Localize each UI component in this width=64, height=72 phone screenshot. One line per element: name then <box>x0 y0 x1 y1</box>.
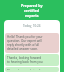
staticText: Prepared by <box>21 3 43 8</box>
staticText: certified <box>24 8 40 13</box>
button[interactable]: Thanks, looking forward <box>7 56 57 64</box>
staticText: detailed answer soon. <box>7 47 38 51</box>
staticText: to hearing back from you <box>7 60 43 64</box>
button[interactable]: Hello! Thank you for your <box>7 35 57 51</box>
staticText: Today, 10:24 <box>23 24 41 28</box>
staticText: experts <box>25 13 39 18</box>
staticText: Thanks, looking forward <box>7 56 42 60</box>
staticText: Please share a photo of <box>7 69 41 70</box>
staticText: question. Our expert will <box>7 39 42 43</box>
staticText: Hello! Thank you for your <box>7 35 43 39</box>
staticText: reply shortly with a full <box>7 43 40 47</box>
button[interactable]: Please share a photo of <box>7 69 57 70</box>
